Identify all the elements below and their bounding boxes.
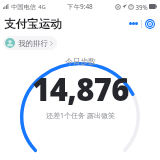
staticText: 下午9:48 [67, 2, 93, 11]
staticText: 14,876 [32, 68, 129, 110]
staticText: 支付宝运动 [4, 17, 62, 31]
button[interactable]: 支付宝运动 [0, 15, 66, 33]
staticText: 还差1个任务 露出微笑 [46, 111, 115, 121]
staticText: 我的排行 [18, 39, 48, 48]
button[interactable]: 我的排行 [3, 36, 57, 50]
staticText: 中国电信 [11, 3, 36, 11]
button[interactable]: Target [142, 16, 157, 31]
staticText: 39% [135, 3, 148, 11]
button[interactable]: 14,876 [32, 68, 129, 110]
button[interactable]: More options [126, 16, 141, 31]
staticText: 今日步数 [65, 57, 96, 67]
staticText: 4G [38, 3, 46, 11]
